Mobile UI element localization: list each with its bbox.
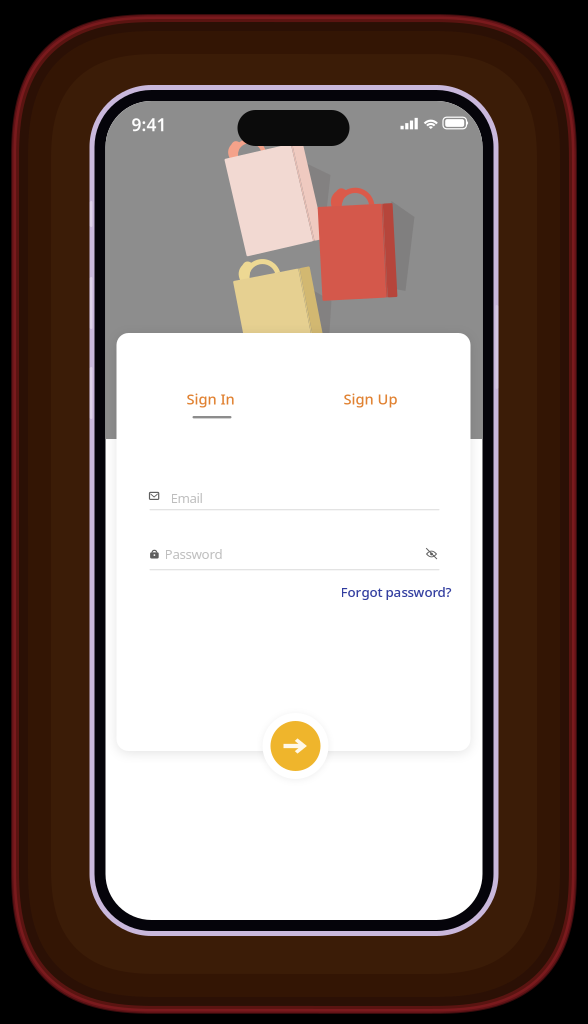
staticText: Password	[164, 545, 222, 563]
button[interactable]: Show password	[417, 540, 445, 568]
button[interactable]: Continue	[270, 721, 320, 771]
staticText: Forgot password?	[340, 583, 451, 601]
button[interactable]: Sign Up	[318, 369, 422, 423]
staticText: Sign In	[186, 389, 234, 408]
button[interactable]: Forgot password?	[336, 579, 454, 607]
staticText: 9:41	[131, 113, 166, 136]
button[interactable]: Sign In	[163, 369, 267, 423]
staticText: Email	[170, 489, 202, 507]
staticText: Sign Up	[343, 389, 397, 408]
button[interactable]: Password	[149, 543, 411, 571]
button[interactable]: Email	[149, 483, 439, 511]
